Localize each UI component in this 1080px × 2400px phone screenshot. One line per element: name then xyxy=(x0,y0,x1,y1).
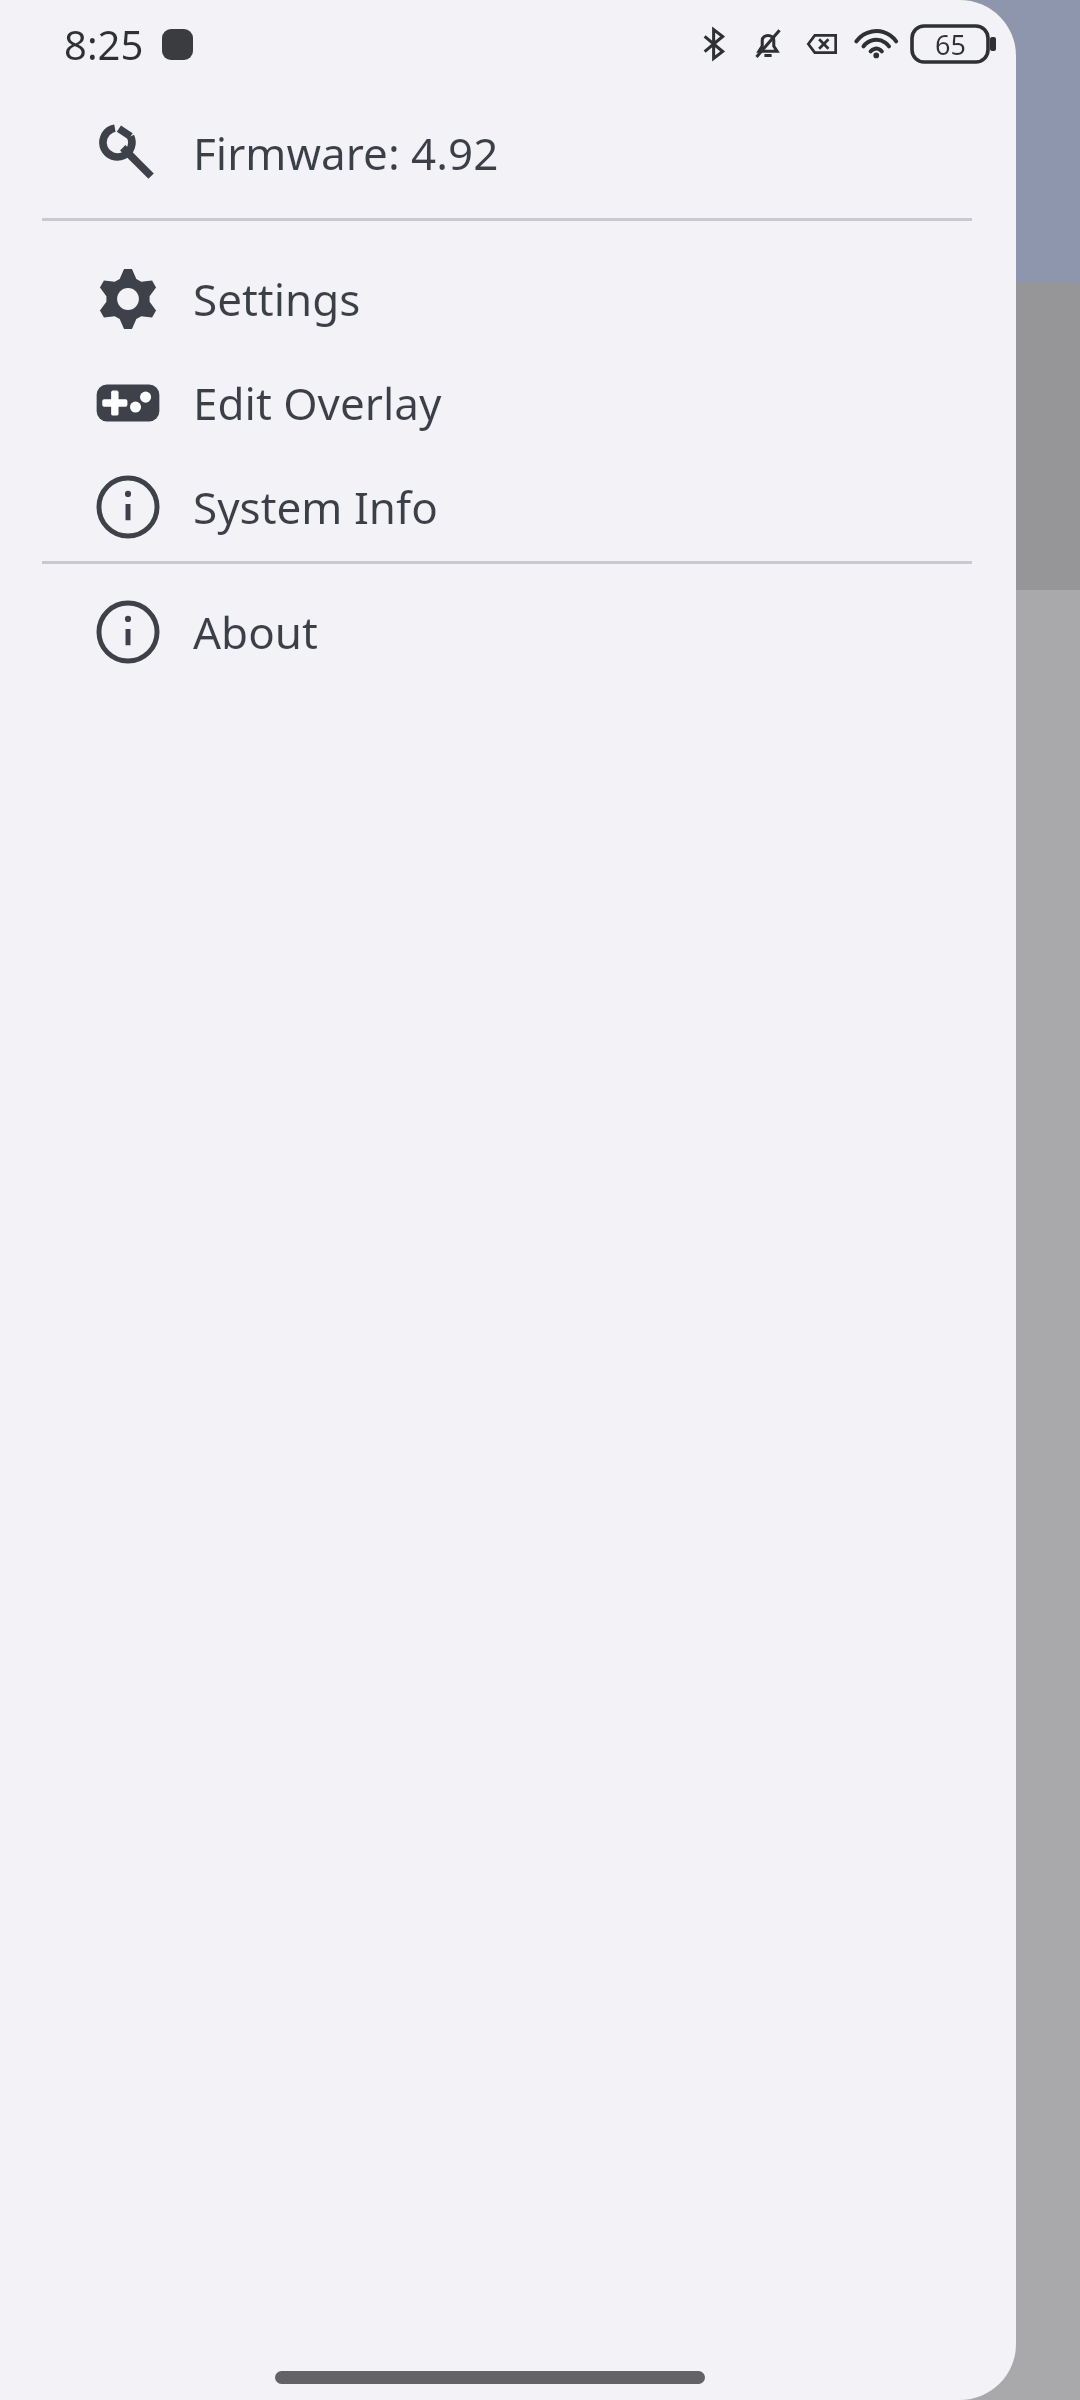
staticText: About xyxy=(193,602,318,662)
other: Settings xyxy=(95,266,161,332)
staticText: Edit Overlay xyxy=(193,373,442,433)
button[interactable]: Settings xyxy=(0,247,1016,351)
staticText: System Info xyxy=(193,477,438,537)
other: Firmware xyxy=(95,120,161,186)
other: Info xyxy=(95,599,161,665)
staticText: 65 xyxy=(935,26,966,62)
button[interactable]: Info xyxy=(0,580,1016,684)
staticText: 8:25 xyxy=(64,17,144,71)
button[interactable]: Edit Overlay xyxy=(0,351,1016,455)
staticText: Settings xyxy=(193,269,361,329)
staticText: Firmware: 4.92 xyxy=(193,123,499,183)
button[interactable]: Firmware xyxy=(0,88,1016,218)
other: Info xyxy=(95,474,161,540)
other: Edit Overlay xyxy=(95,370,161,436)
button[interactable]: Info xyxy=(0,455,1016,559)
